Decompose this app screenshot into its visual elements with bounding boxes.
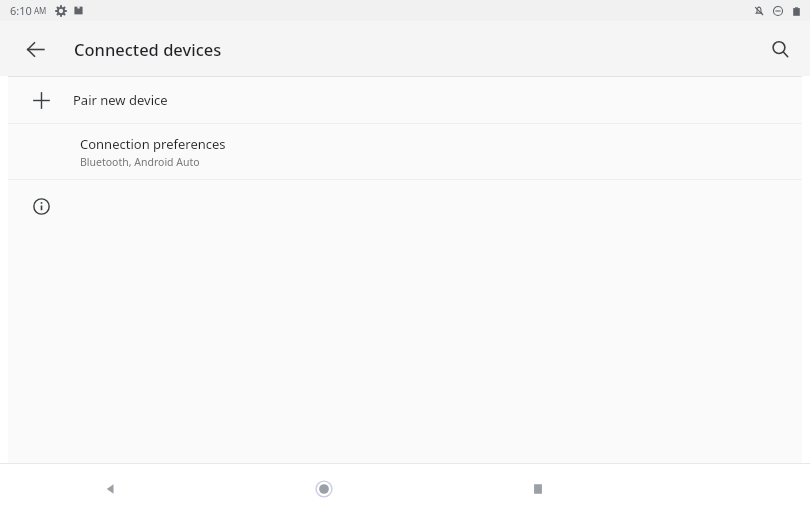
staticText: Connection preferences [80,135,226,153]
staticText: Bluetooth, Android Auto [80,155,200,169]
button[interactable]: Recent apps [515,466,561,512]
button[interactable]: Back [14,28,56,70]
button[interactable]: Information [8,180,802,232]
button[interactable]: Home [301,466,347,512]
button[interactable]: Connection preferences [8,124,802,179]
button[interactable]: Search [758,27,802,71]
button[interactable]: Pair new device [8,77,802,123]
staticText: Pair new device [73,91,168,109]
staticText: 6:10 [10,3,32,18]
button[interactable]: Back [87,466,133,512]
staticText: Connected devices [74,38,222,60]
staticText: AM [34,5,47,16]
